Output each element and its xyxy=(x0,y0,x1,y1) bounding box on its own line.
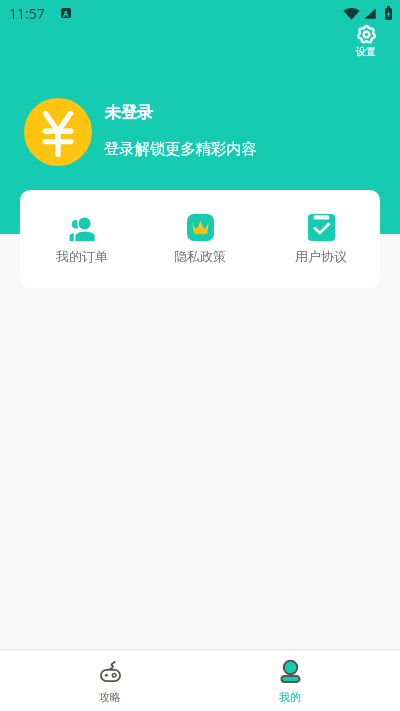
staticText: 设置 xyxy=(356,45,376,58)
button[interactable]: 攻略 xyxy=(70,651,150,711)
staticText: 攻略 xyxy=(99,690,121,704)
button[interactable]: 用户协议 xyxy=(273,190,369,288)
button[interactable]: 我的订单 xyxy=(34,190,130,288)
staticText: 未登录 xyxy=(105,103,153,123)
staticText: 登录解锁更多精彩内容 xyxy=(104,139,257,158)
button[interactable]: 我的 xyxy=(250,651,330,711)
staticText: 我的 xyxy=(279,690,301,704)
staticText: 隐私政策 xyxy=(174,248,226,264)
staticText: 11:57 xyxy=(9,4,45,23)
button[interactable]: 头像 xyxy=(24,98,92,166)
staticText: A xyxy=(63,8,69,18)
staticText: 我的订单 xyxy=(56,248,108,264)
button[interactable]: 设置 xyxy=(349,24,383,60)
staticText: 用户协议 xyxy=(295,248,347,264)
button[interactable]: 隐私政策 xyxy=(152,190,248,288)
